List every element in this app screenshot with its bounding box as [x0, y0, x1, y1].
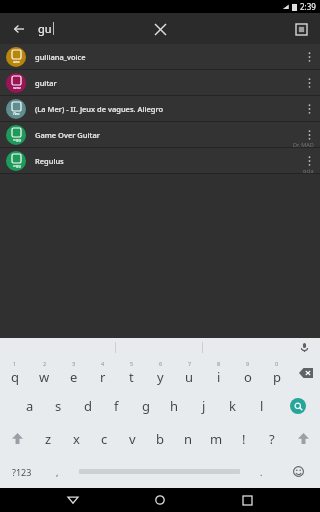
staticText: c — [101, 430, 108, 448]
button[interactable]: z — [34, 422, 62, 455]
staticText: z — [45, 430, 52, 448]
button[interactable]: aac — [0, 44, 320, 70]
staticText: 7 — [188, 360, 192, 367]
button[interactable]: More options — [298, 148, 320, 174]
button[interactable]: Back — [59, 488, 87, 512]
button[interactable]: Period — [247, 455, 276, 488]
button[interactable]: a — [15, 389, 44, 422]
staticText: u — [185, 368, 194, 386]
button[interactable]: More options — [298, 96, 320, 122]
staticText: y — [157, 368, 164, 386]
staticText: 5 — [130, 360, 134, 367]
staticText: f — [114, 397, 119, 415]
staticText: 9 — [246, 360, 250, 367]
button[interactable]: x — [62, 422, 90, 455]
button[interactable]: f — [102, 389, 131, 422]
staticText: k — [229, 397, 236, 415]
button[interactable]: More options — [298, 70, 320, 96]
button[interactable]: k — [218, 389, 247, 422]
button[interactable]: Home — [146, 488, 174, 512]
button[interactable]: wav — [0, 70, 320, 96]
button[interactable]: 1 — [0, 356, 30, 389]
button[interactable]: h — [160, 389, 189, 422]
button[interactable]: m — [202, 422, 230, 455]
button[interactable]: b — [146, 422, 174, 455]
staticText: 6 — [159, 360, 163, 367]
button[interactable]: Voice input — [296, 339, 312, 355]
button[interactable]: 7 — [175, 356, 204, 389]
button[interactable]: s — [44, 389, 73, 422]
staticText: Game Over Guitar — [35, 130, 298, 140]
staticText: r — [100, 368, 106, 386]
button[interactable]: ? — [258, 422, 286, 455]
staticText: ogg — [13, 163, 21, 168]
staticText: 0 — [275, 360, 279, 367]
staticText: gu — [38, 21, 52, 36]
button[interactable]: ogg — [0, 148, 320, 174]
button[interactable]: Shift — [0, 422, 34, 455]
staticText: p — [273, 368, 281, 386]
button[interactable]: 6 — [146, 356, 175, 389]
button[interactable]: More options — [298, 44, 320, 70]
staticText: (La Mer) - II. Jeux de vagues. Allegro — [35, 104, 298, 114]
button[interactable]: Emoji — [276, 455, 320, 488]
button[interactable]: Recents — [233, 488, 261, 512]
button[interactable]: ! — [230, 422, 258, 455]
staticText: ? — [269, 430, 275, 448]
button[interactable]: Search — [276, 389, 320, 422]
button[interactable]: 8 — [204, 356, 233, 389]
staticText: ?123 — [12, 466, 32, 478]
button[interactable]: l — [247, 389, 276, 422]
staticText: . — [260, 466, 263, 478]
staticText: gcla — [303, 167, 314, 174]
button[interactable]: Clear — [147, 16, 173, 42]
button[interactable]: Space — [72, 455, 247, 488]
button[interactable]: 5 — [117, 356, 146, 389]
button[interactable]: c — [90, 422, 118, 455]
staticText: d — [84, 397, 92, 415]
button[interactable]: g — [131, 389, 160, 422]
staticText: i — [217, 368, 221, 386]
button[interactable]: Select all — [288, 16, 314, 42]
button[interactable]: 9 — [233, 356, 262, 389]
button[interactable]: j — [189, 389, 218, 422]
staticText: a — [26, 397, 34, 415]
staticText: x — [73, 430, 80, 448]
button[interactable]: flac — [0, 96, 320, 122]
staticText: v — [129, 430, 136, 448]
button[interactable]: 3 — [59, 356, 88, 389]
button[interactable]: ?123 — [0, 455, 43, 488]
staticText: guitar — [35, 78, 298, 88]
button[interactable]: d — [73, 389, 102, 422]
button[interactable]: Shift — [286, 422, 320, 455]
button[interactable]: Comma — [43, 455, 72, 488]
staticText: q — [11, 368, 19, 386]
button[interactable]: Back — [6, 16, 32, 42]
button[interactable]: Backspace — [291, 356, 320, 389]
staticText: Dr. MAD — [293, 141, 314, 148]
staticText: m — [210, 430, 223, 448]
staticText: j — [202, 397, 206, 415]
button[interactable]: 4 — [88, 356, 117, 389]
staticText: n — [184, 430, 193, 448]
staticText: e — [70, 368, 78, 386]
staticText: ogg — [13, 137, 21, 142]
button[interactable]: 2 — [30, 356, 59, 389]
staticText: 8 — [217, 360, 221, 367]
staticText: flac — [13, 111, 20, 116]
button[interactable]: v — [118, 422, 146, 455]
staticText: t — [129, 368, 134, 386]
staticText: ! — [242, 430, 246, 448]
staticText: s — [55, 397, 62, 415]
staticText: , — [56, 466, 59, 478]
staticText: g — [142, 397, 150, 415]
button[interactable]: ogg — [0, 122, 320, 148]
button[interactable]: 0 — [262, 356, 291, 389]
button[interactable]: n — [174, 422, 202, 455]
staticText: b — [156, 430, 164, 448]
staticText: 1 — [13, 360, 17, 367]
button[interactable]: More options — [298, 122, 320, 148]
staticText: 2:39 — [300, 1, 316, 12]
staticText: wav — [13, 85, 21, 90]
staticText: w — [39, 368, 50, 386]
